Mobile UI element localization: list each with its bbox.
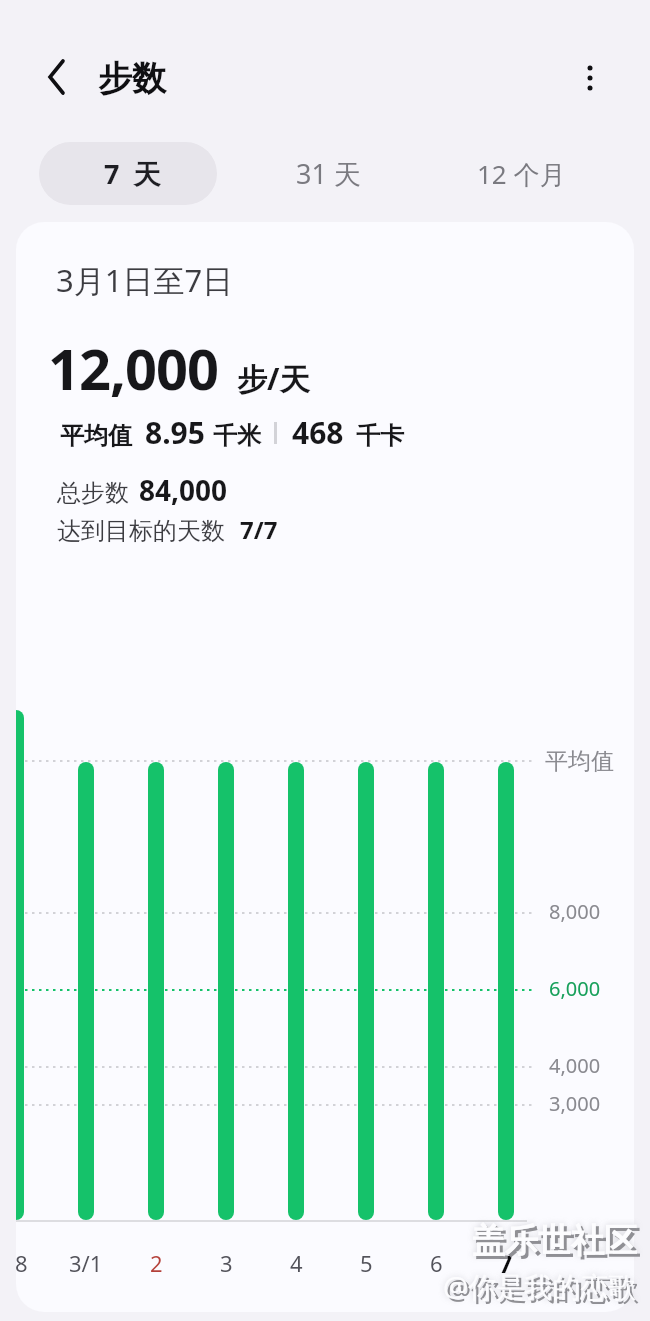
staticText: 84,000 (139, 471, 228, 509)
staticText: 468 (292, 412, 344, 453)
staticText: 7/7 (240, 513, 278, 546)
staticText: 8,000 (549, 898, 601, 925)
staticText: 平均值 (60, 421, 132, 451)
staticText: 步数 (98, 57, 166, 100)
staticText: 8.95 (145, 412, 205, 453)
staticText: 2 (150, 1248, 163, 1278)
staticText: 6,000 (549, 975, 601, 1002)
button[interactable] (33, 53, 81, 101)
staticText: 3,000 (549, 1090, 601, 1117)
staticText: 盖乐世社区 (472, 1220, 637, 1262)
staticText: 12,000 (48, 330, 219, 406)
button[interactable]: 31 天 (230, 142, 426, 205)
staticText: 步/天 (237, 358, 310, 399)
staticText: 3月1日至7日 (56, 259, 234, 301)
staticText: 5 (360, 1248, 373, 1278)
staticText: 7 天 (104, 155, 161, 192)
staticText: 7 (499, 1248, 513, 1278)
staticText: 6 (430, 1248, 443, 1278)
staticText: 千米 (213, 421, 261, 451)
staticText: @你是我的恋歌 (446, 1270, 640, 1308)
staticText: 盖乐世社区 (475, 1223, 640, 1265)
button[interactable]: 12 个月 (423, 142, 619, 205)
staticText: 12 个月 (477, 156, 566, 192)
staticText: 达到目标的天数 (57, 516, 225, 546)
staticText: 4,000 (549, 1052, 601, 1079)
staticText: 31 天 (296, 155, 361, 192)
staticText: 4 (290, 1248, 303, 1278)
staticText: @你是我的恋歌 (443, 1267, 637, 1305)
staticText: 千卡 (356, 421, 404, 451)
staticText: 3 (220, 1248, 233, 1278)
button[interactable]: 7 天 (39, 142, 217, 205)
button[interactable] (568, 48, 612, 106)
staticText: 8 (16, 1248, 28, 1278)
staticText: 总步数 (57, 478, 129, 508)
staticText: 平均值 (545, 747, 614, 776)
staticText: 3/1 (69, 1248, 103, 1278)
